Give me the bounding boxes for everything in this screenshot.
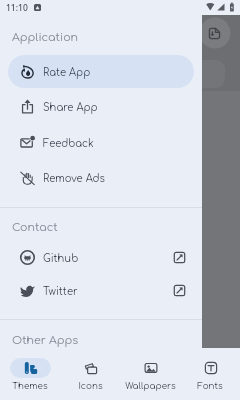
staticText: Icons [78,381,103,391]
staticText: Twitter [43,286,78,297]
staticText: Themes [12,381,48,391]
other: Open in browser [173,284,186,297]
staticText: Contact [12,221,58,233]
staticText: 11:10 [6,2,28,14]
staticText: Share App [43,102,98,113]
staticText: Other Apps [12,334,79,346]
staticText: Feedback [43,138,94,149]
button[interactable]: Themes [0,350,60,400]
button[interactable]: Feedback [8,126,194,159]
staticText: Github [43,253,79,264]
button[interactable]: Wallpapers [120,350,180,400]
button[interactable]: Rate App [8,55,194,88]
staticText: Application [12,31,79,43]
button[interactable]: Github [8,241,194,274]
staticText: Rate App [43,67,91,78]
button[interactable]: Share App [8,90,194,123]
button[interactable]: Fonts [180,350,240,400]
button[interactable]: Remove Ads [8,161,194,194]
button[interactable]: Icons [60,350,120,400]
staticText: Remove Ads [43,173,105,184]
staticText: Wallpapers [125,381,176,391]
button[interactable]: Twitter [8,274,194,307]
other: Open in browser [173,251,186,264]
staticText: Fonts [197,381,223,391]
